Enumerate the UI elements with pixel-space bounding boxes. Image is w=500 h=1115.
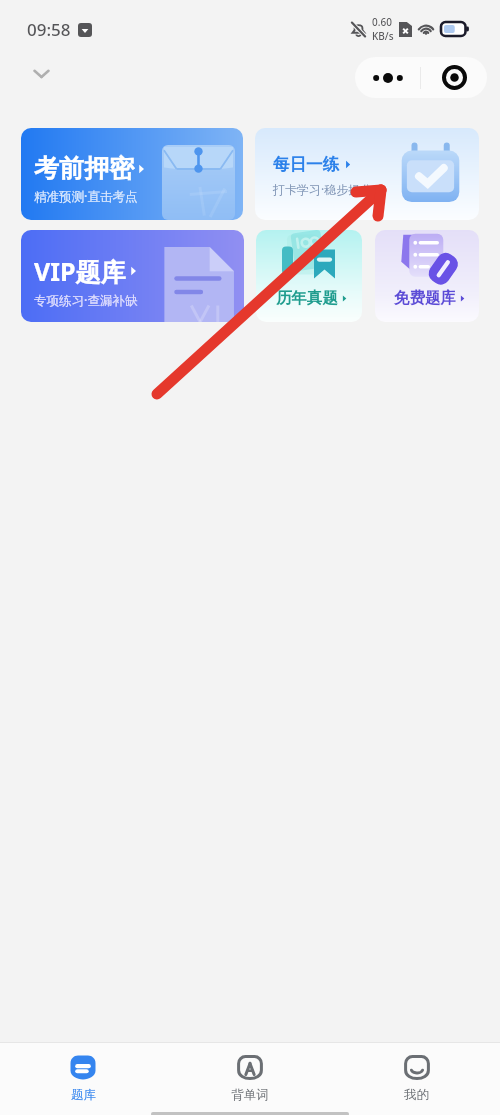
staticText: 专项练习·查漏补缺 xyxy=(34,292,138,309)
staticText: 0.60 xyxy=(372,15,392,29)
button[interactable]: 历年真题 xyxy=(256,230,362,322)
staticText: 每日一练 xyxy=(273,154,339,175)
button[interactable]: 考前押密 xyxy=(21,128,243,220)
button[interactable]: Collapse xyxy=(26,58,56,88)
staticText: 题库 xyxy=(71,1087,96,1103)
button[interactable]: 题库 xyxy=(0,1048,166,1110)
staticText: 我的 xyxy=(404,1087,429,1103)
button[interactable]: 免费题库 xyxy=(375,230,479,322)
staticText: KB/s xyxy=(372,29,394,43)
staticText: 精准预测·直击考点 xyxy=(34,188,138,205)
button[interactable]: 我的 xyxy=(333,1048,500,1110)
button[interactable]: VIP题库 xyxy=(21,230,244,322)
staticText: 考前押密 xyxy=(34,153,134,184)
staticText: 09:58 xyxy=(27,18,71,41)
button[interactable]: 每日一练 xyxy=(255,128,479,220)
button[interactable]: 背单词 xyxy=(166,1048,333,1110)
staticText: 背单词 xyxy=(231,1087,269,1103)
staticText: 打卡学习·稳步提分 xyxy=(273,181,373,197)
button[interactable] xyxy=(355,57,487,98)
staticText: 免费题库 xyxy=(394,288,456,308)
staticText: 历年真题 xyxy=(276,288,338,308)
staticText: VIP题库 xyxy=(34,254,126,288)
